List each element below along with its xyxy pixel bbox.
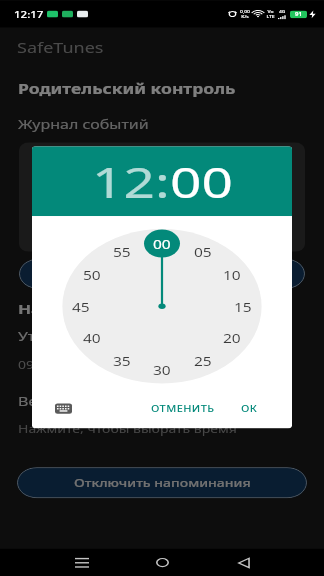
button[interactable]: ОТМЕНИТЬ [145, 397, 221, 421]
staticText: 0,00 K/s [240, 9, 250, 19]
staticText: Отключить напоминания [74, 476, 251, 490]
staticText: 00 [153, 236, 171, 252]
staticText: Утро [18, 328, 55, 345]
button[interactable]: Back [203, 549, 284, 576]
button[interactable]: ОК [235, 397, 264, 421]
staticText: 55 [113, 244, 131, 260]
staticText: Смотреть всё [116, 266, 209, 281]
staticText: 30 [153, 362, 171, 378]
staticText: 4G [279, 9, 286, 14]
button[interactable]: Отключить напоминания [17, 467, 307, 498]
button[interactable]: Recent apps [41, 549, 122, 576]
staticText: Напоминания [18, 300, 143, 317]
staticText: 09:00 [18, 357, 54, 372]
staticText: Vo LTE [266, 9, 275, 19]
staticText: 45 [72, 299, 90, 315]
staticText: 12:17 [14, 8, 44, 21]
button[interactable]: 12 [92, 152, 155, 211]
staticText: Вечер [18, 393, 66, 410]
button[interactable]: Home [122, 549, 203, 576]
staticText: 40 [83, 330, 101, 346]
staticText: 10 [223, 267, 241, 283]
staticText: 05 [194, 244, 212, 260]
staticText: 15 [234, 299, 252, 315]
staticText: Родительский контроль [18, 80, 236, 98]
staticText: ОТМЕНИТЬ [151, 403, 215, 414]
button[interactable]: Switch to text input [50, 399, 76, 418]
button[interactable]: Смотреть всё [19, 259, 305, 289]
staticText: 20 [223, 330, 241, 346]
staticText: : [155, 152, 170, 211]
staticText: Нажмите, чтобы выбрать время [18, 421, 237, 436]
staticText: 25 [194, 353, 212, 369]
staticText: ОК [241, 403, 258, 414]
staticText: 35 [113, 353, 131, 369]
staticText: 91 [295, 11, 302, 18]
staticText: SafeTunes [17, 38, 104, 58]
staticText: Журнал событий [18, 116, 149, 133]
staticText: 50 [83, 267, 101, 283]
button[interactable]: 00 [170, 152, 233, 211]
